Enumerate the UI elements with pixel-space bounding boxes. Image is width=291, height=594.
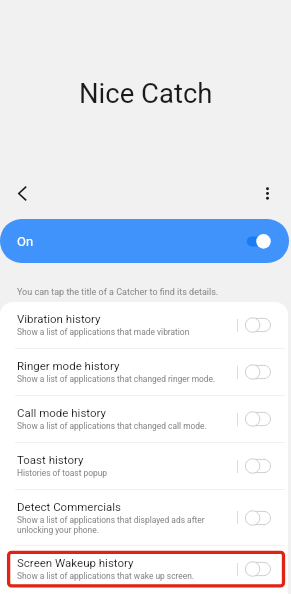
staticText: Ringer mode history (17, 359, 120, 372)
button[interactable]: Vibration history (0, 302, 288, 348)
button[interactable]: Navigate up (8, 179, 37, 208)
button[interactable]: Toast history (0, 443, 288, 489)
staticText: Screen Wakeup history (17, 556, 134, 569)
staticText: You can tap the title of a Catcher to fi… (17, 287, 219, 298)
staticText: Show a list of applications that made vi… (17, 327, 217, 337)
staticText: On (17, 234, 34, 249)
staticText: Show a list of applications that changed… (17, 421, 217, 431)
button[interactable]: More options (253, 179, 282, 208)
button[interactable]: Toggle Screen Wakeup history (244, 559, 274, 579)
button[interactable]: Toggle Detect Commercials (244, 508, 274, 528)
button[interactable]: Toggle Vibration history (244, 315, 274, 335)
button[interactable]: Toggle Ringer mode history (244, 362, 274, 382)
staticText: Show a list of applications that wake up… (17, 571, 217, 581)
staticText: Show a list of applications that display… (17, 515, 217, 535)
staticText: Toast history (17, 453, 84, 466)
staticText: Show a list of applications that changed… (17, 374, 217, 384)
staticText: Nice Catch (79, 77, 213, 109)
button[interactable]: Detect Commercials (0, 490, 288, 545)
button[interactable]: Toggle Call mode history (244, 409, 274, 429)
button[interactable]: Nice Catch on (0, 219, 289, 263)
button[interactable]: Ringer mode history (0, 349, 288, 395)
button[interactable]: Screen Wakeup history (0, 546, 288, 592)
staticText: Call mode history (17, 406, 106, 419)
staticText: Vibration history (17, 312, 101, 325)
button[interactable]: Toggle Toast history (244, 456, 274, 476)
staticText: Detect Commercials (17, 500, 122, 513)
button[interactable]: Call mode history (0, 396, 288, 442)
staticText: Histories of toast popup (17, 468, 217, 478)
